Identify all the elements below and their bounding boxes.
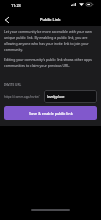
staticText: Editing your community's public link sho… — [4, 57, 92, 68]
staticText: lovelyplace — [47, 94, 65, 99]
staticText: https://comm.app/invite/ — [4, 95, 40, 99]
staticText: Save & enable public link — [29, 111, 73, 116]
staticText: Public Link — [40, 17, 61, 22]
button[interactable]: Save & enable public link — [4, 106, 97, 120]
staticText: Let your community be more accessible wi… — [4, 29, 92, 52]
button[interactable]: lovelyplace — [44, 90, 97, 103]
staticText: INVITE URL — [4, 83, 22, 87]
button[interactable]: Back — [0, 13, 13, 26]
staticText: 11:23 — [11, 3, 21, 8]
